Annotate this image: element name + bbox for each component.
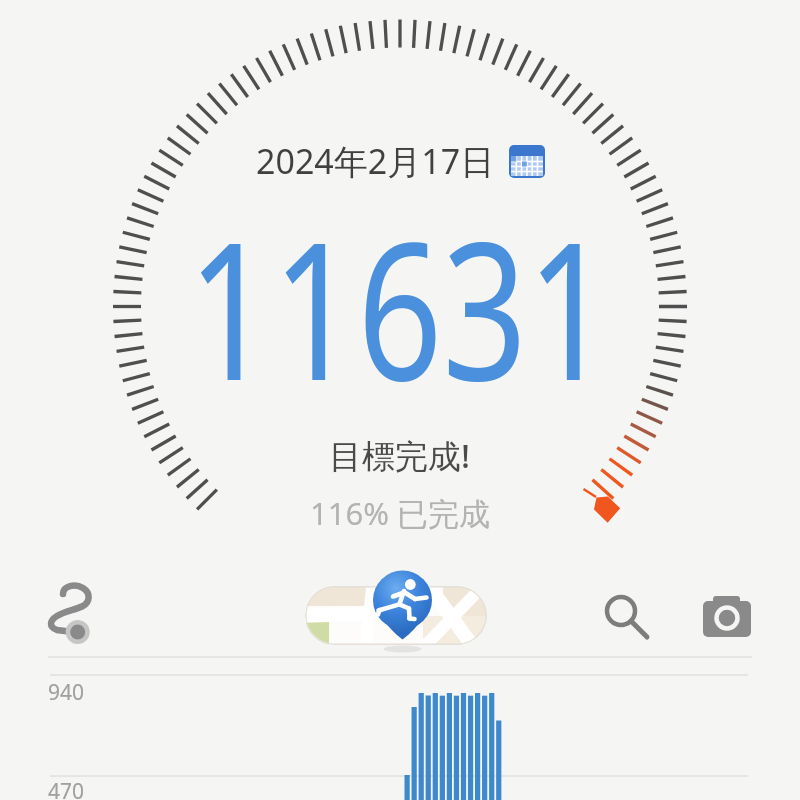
staticText: 940 (48, 678, 85, 707)
staticText: 11631 (188, 177, 612, 436)
button[interactable] (40, 578, 102, 644)
button[interactable] (594, 584, 654, 644)
button[interactable] (305, 586, 487, 645)
staticText: 目標完成! (329, 433, 471, 478)
staticText: 2024年2月17日 (256, 138, 495, 184)
staticText: 116% 已完成 (310, 492, 491, 534)
button[interactable]: 2024年2月17日 (256, 138, 545, 184)
button[interactable] (699, 592, 755, 644)
staticText: 470 (48, 777, 85, 800)
